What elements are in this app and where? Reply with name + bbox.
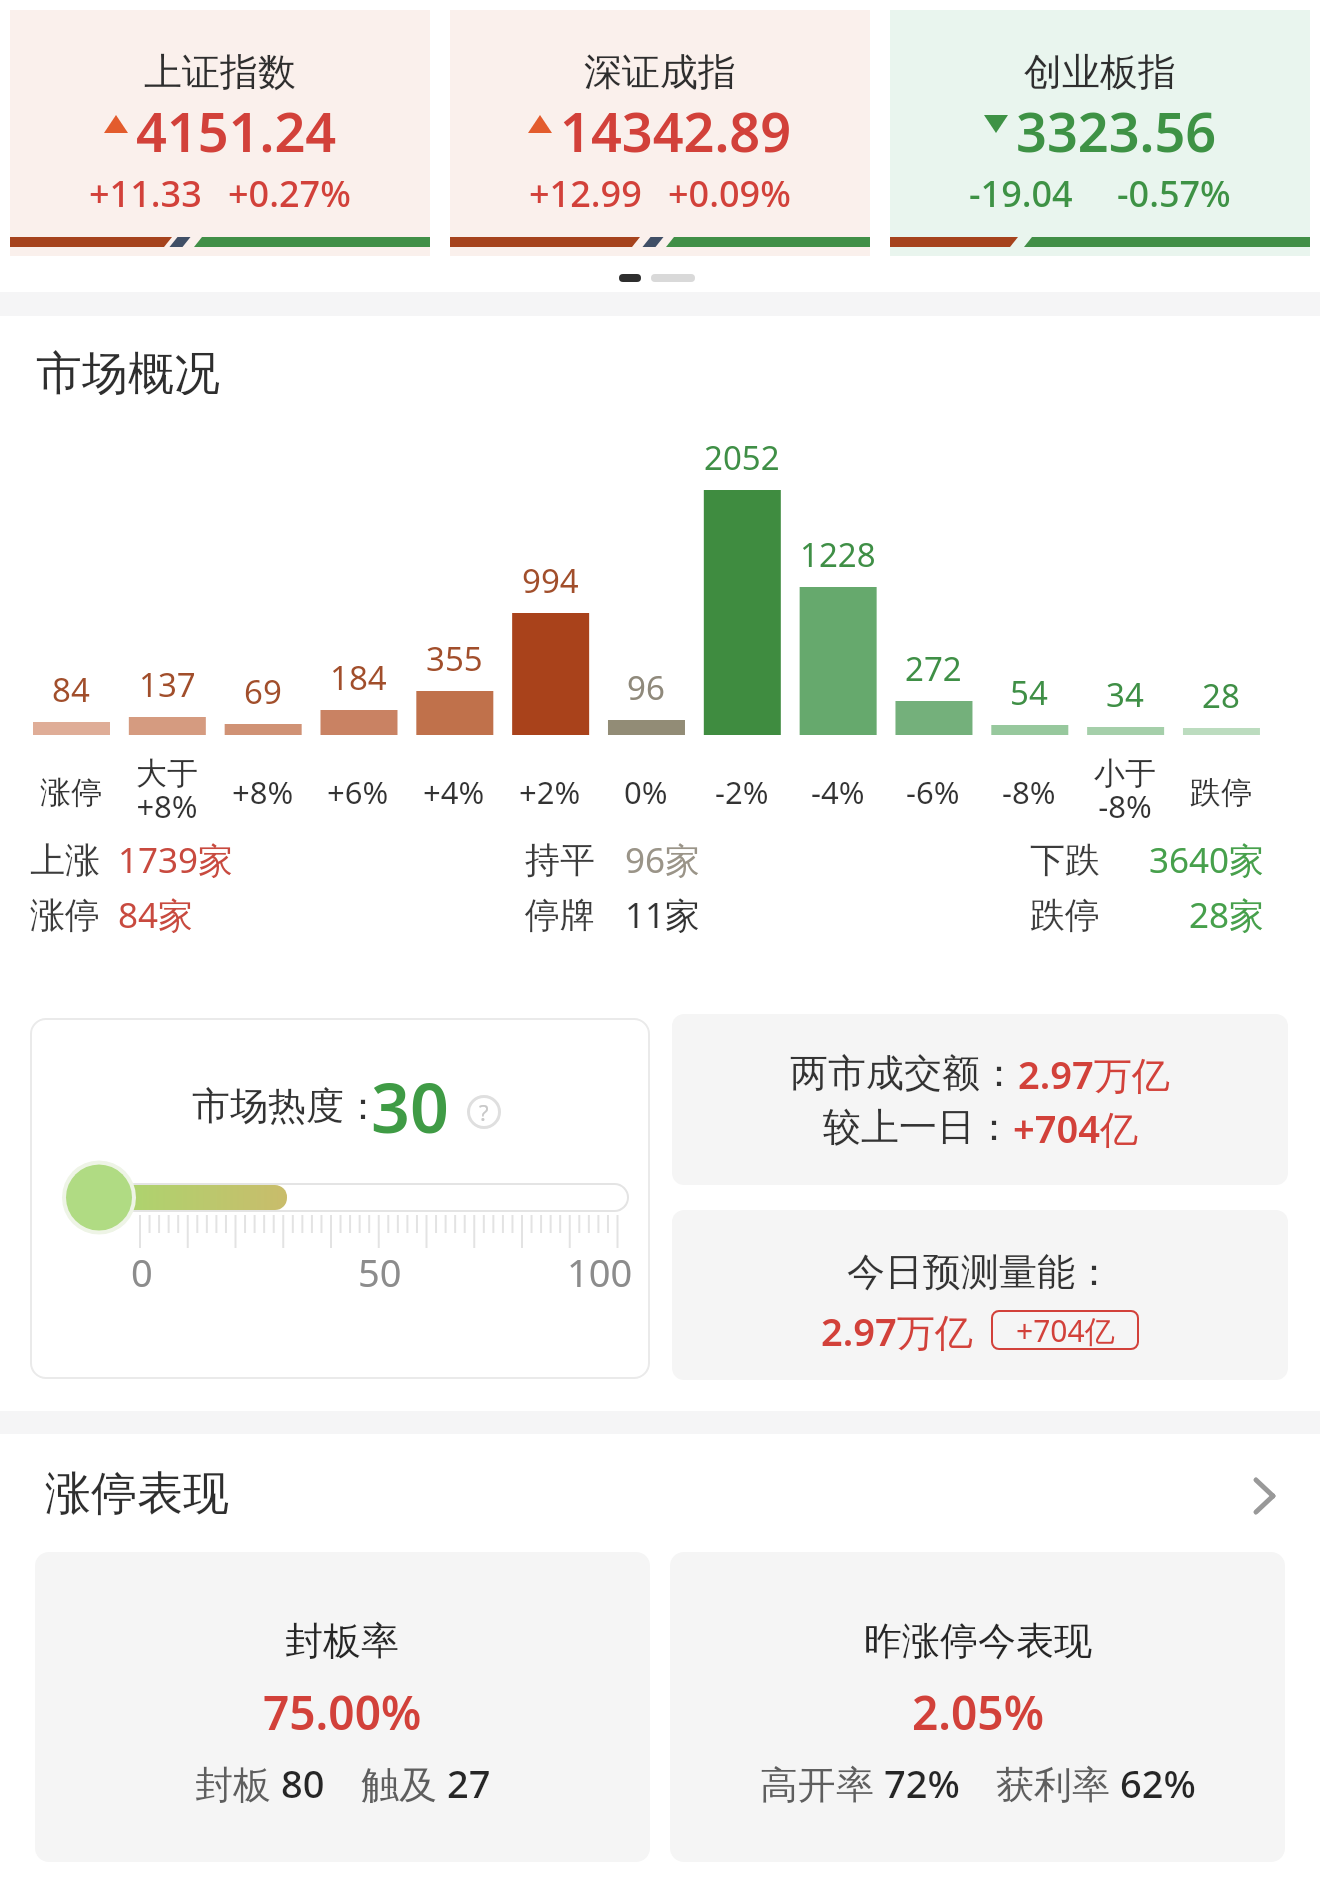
staticText: 两市成交额： [790,1049,1018,1097]
staticText: +8% [232,771,294,813]
staticText: 994 [522,558,579,603]
staticText: 2052 [704,435,780,480]
staticText: 80 [281,1757,325,1807]
staticText: 昨涨停今表现 [864,1617,1092,1665]
button[interactable]: 创业板指 [890,10,1310,256]
staticText: 96 [627,665,665,710]
staticText: 下跌 [1030,838,1100,882]
staticText: 0 [131,1246,153,1298]
staticText: 184 [330,655,387,700]
staticText: 涨停表现 [45,1465,229,1523]
staticText: 3323.56 [1016,94,1217,154]
staticText: 深证成指 [584,48,736,96]
staticText: -8% [1002,771,1056,813]
staticText: 27 [447,1757,491,1807]
staticText: 2.97万亿 [821,1305,973,1355]
staticText: +0.09% [668,169,791,218]
staticText: 1739家 [118,836,234,884]
staticText: 0% [624,771,668,813]
staticText: 封板率 [285,1617,399,1665]
staticText: +4% [423,771,485,813]
staticText: 市场概况 [36,345,220,395]
button[interactable]: ? [467,1095,501,1129]
button[interactable]: 深证成指 [450,10,870,256]
staticText: -6% [906,771,960,813]
staticText: 停牌 [525,893,595,937]
staticText: -19.04 [969,169,1073,218]
staticText: 34 [1106,672,1144,717]
staticText: 84 [52,667,90,712]
staticText: 54 [1010,670,1048,715]
staticText: +11.33 [89,169,202,218]
staticText: -4% [811,771,865,813]
button[interactable] [670,1552,1285,1862]
staticText: 2.97万亿 [1018,1048,1170,1098]
staticText: 69 [244,669,282,714]
staticText: 今日预测量能： [847,1248,1113,1296]
button[interactable]: 上证指数 [10,10,430,256]
staticText: 50 [358,1246,402,1298]
staticText: 持平 [525,838,595,882]
staticText: 市场热度： [192,1082,382,1130]
staticText: 跌停 [1190,773,1252,812]
staticText: 84家 [118,891,194,939]
staticText: 1228 [800,532,876,577]
staticText: 上涨 [30,838,100,882]
staticText: 62% [1120,1757,1196,1807]
staticText: +704亿 [1016,1310,1115,1350]
staticText: ? [479,1097,489,1127]
staticText: 3640家 [1149,836,1265,884]
staticText: 11家 [625,891,701,939]
staticText: 涨停 [30,893,100,937]
staticText: 4151.24 [136,94,337,154]
staticText: 创业板指 [1024,48,1176,96]
staticText: 上证指数 [144,48,296,96]
staticText: 272 [905,646,962,691]
staticText: 100 [567,1246,633,1298]
staticText: 137 [139,662,196,707]
staticText: +2% [519,771,581,813]
button[interactable]: +704亿 [991,1310,1139,1350]
staticText: +6% [327,771,389,813]
staticText: 30 [371,1060,449,1153]
staticText: -2% [715,771,769,813]
button[interactable] [35,1552,650,1862]
staticText: 355 [426,636,483,681]
button[interactable] [672,1210,1288,1380]
staticText: 2.05% [912,1681,1044,1744]
staticText: 96家 [625,836,701,884]
staticText: 大于 +8% [136,754,198,827]
staticText: +12.99 [529,169,642,218]
staticText: 28 [1202,673,1240,718]
staticText: 涨停 [40,773,102,812]
staticText: 28家 [1189,891,1265,939]
staticText: 获利率 [996,1757,1120,1807]
staticText: 较上一日： [823,1103,1013,1151]
staticText: +0.27% [228,169,351,218]
staticText: 72% [884,1757,960,1807]
staticText: 触及 [361,1757,447,1807]
button[interactable]: 涨停表现 [0,1462,1320,1526]
staticText: 14342.89 [560,94,792,154]
staticText: 封板 [195,1757,281,1807]
staticText: 跌停 [1030,893,1100,937]
button[interactable] [672,1014,1288,1185]
staticText: -0.57% [1117,169,1231,218]
staticText: 75.00% [263,1681,422,1744]
button[interactable] [30,1018,650,1379]
staticText: +704亿 [1013,1102,1138,1152]
staticText: 高开率 [760,1757,884,1807]
staticText: 小于 -8% [1094,754,1156,827]
